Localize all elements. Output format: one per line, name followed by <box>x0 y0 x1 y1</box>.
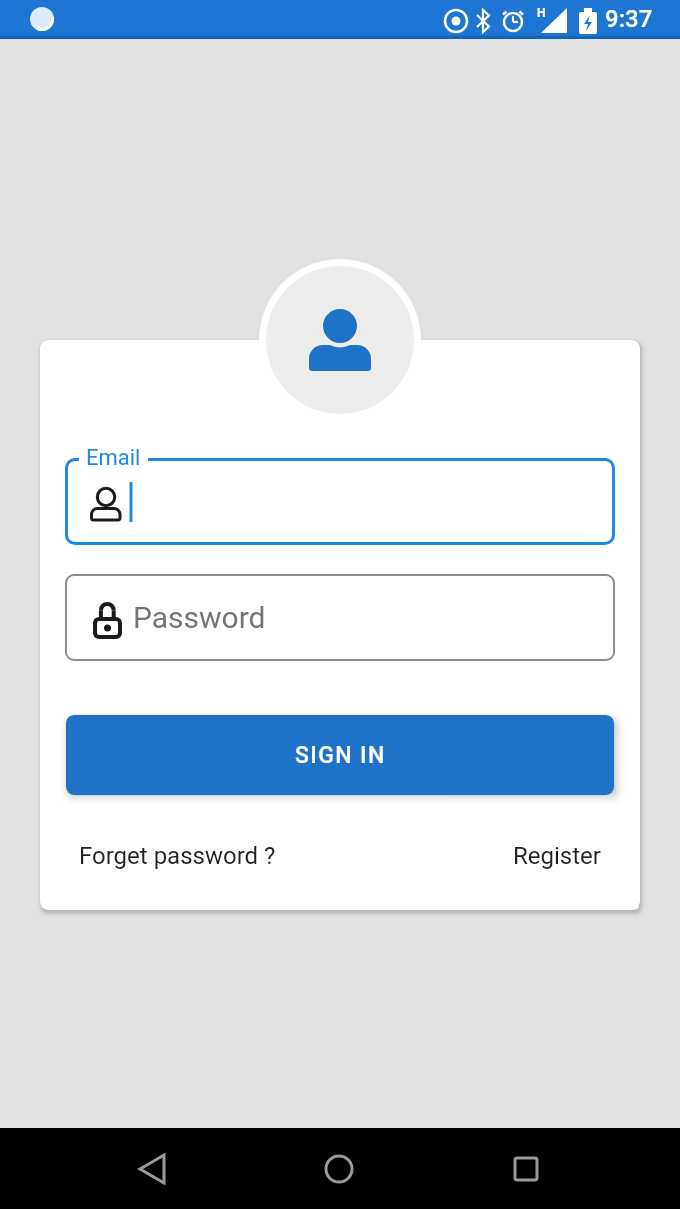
button[interactable]: Register <box>513 842 601 870</box>
button[interactable]: SIGN IN <box>66 715 614 795</box>
button[interactable] <box>453 1128 680 1209</box>
button[interactable]: Password <box>65 574 615 661</box>
staticText: Password <box>133 600 266 635</box>
button[interactable] <box>226 1128 453 1209</box>
staticText: SIGN IN <box>295 742 386 769</box>
staticText: Forget password ? <box>79 842 276 870</box>
staticText: Email <box>86 445 141 471</box>
button[interactable] <box>0 1128 226 1209</box>
staticText: Register <box>513 842 601 870</box>
staticText: H <box>537 6 546 20</box>
staticText: 9:37 <box>605 5 653 33</box>
button[interactable] <box>65 458 615 545</box>
button[interactable]: Forget password ? <box>79 842 276 870</box>
